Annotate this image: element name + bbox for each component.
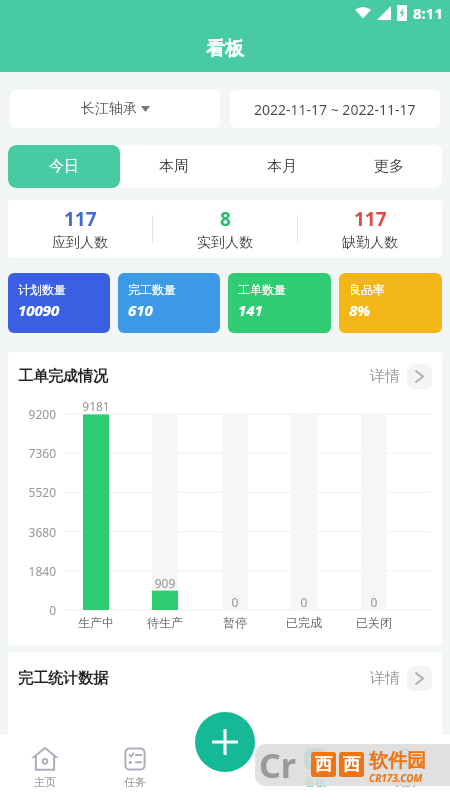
staticText: 完工数量 [128,282,176,297]
staticText: 8 [220,206,231,232]
button[interactable]: 2022-11-17 ~ 2022-11-17 [230,90,440,128]
staticText: 暂停 [205,615,265,630]
staticText: 计划数量 [18,282,66,297]
button[interactable]: 任务 [90,735,180,800]
staticText: 2022-11-17 ~ 2022-11-17 [254,100,416,119]
button[interactable]: 今日 [8,145,120,188]
staticText: 详情 [370,669,400,688]
staticText: 更多 [374,157,404,176]
button[interactable] [195,712,255,772]
button[interactable]: 117 [8,200,152,258]
button[interactable]: 计划数量 [8,273,110,333]
button[interactable]: 我的 [360,735,450,800]
staticText: 缺勤人数 [342,234,398,252]
staticText: 应到人数 [52,234,108,252]
staticText: 软件园 [369,749,426,773]
button[interactable]: 长江轴承 [10,90,220,128]
staticText: 工单完成情况 [18,367,108,386]
staticText: 10090 [18,300,60,320]
button[interactable]: 详情 [370,666,432,691]
staticText: 详情 [370,367,400,386]
staticText: CR173.COM [369,771,423,785]
staticText: 909 [140,575,190,591]
button[interactable]: 117 [298,200,442,258]
staticText: 5520 [8,484,56,500]
staticText: 141 [238,300,263,320]
staticText: 长江轴承 [81,100,137,118]
staticText: 8:11 [413,3,443,23]
staticText: 0 [279,594,329,610]
button[interactable]: 主页 [0,735,90,800]
staticText: 西 [343,754,360,775]
staticText: 0 [8,602,56,618]
staticText: 已关闭 [344,615,404,630]
staticText: 实到人数 [197,234,253,252]
button[interactable]: 更多 [335,145,442,188]
staticText: 完工统计数据 [18,669,108,688]
staticText: 本周 [159,157,189,176]
staticText: 工单数量 [238,282,286,297]
staticText: 117 [354,206,387,232]
staticText: 610 [128,300,153,320]
staticText: 117 [64,206,97,232]
staticText: 待生产 [135,615,195,630]
staticText: 今日 [49,157,79,176]
button[interactable]: 完工数量 [118,273,220,333]
staticText: 西 [315,754,332,775]
button[interactable]: 良品率 [339,273,442,333]
staticText: 看板 [304,775,326,789]
staticText: 9200 [8,406,56,422]
staticText: 任务 [124,775,146,789]
staticText: 良品率 [349,282,385,297]
staticText: 9181 [71,398,121,414]
staticText: 生产中 [66,615,126,630]
staticText: 看板 [206,37,244,61]
staticText: 7360 [8,445,56,461]
button[interactable]: 详情 [370,364,432,389]
staticText: 0 [349,594,399,610]
button[interactable]: 本周 [120,145,228,188]
staticText: Cr [259,744,297,784]
staticText: 0 [210,594,260,610]
staticText: 已完成 [274,615,334,630]
button[interactable]: 工单数量 [228,273,331,333]
button[interactable]: 8 [153,200,297,258]
staticText: 3680 [8,524,56,540]
staticText: 我的 [394,775,416,789]
staticText: 主页 [34,775,56,789]
button[interactable]: 看板 [270,735,360,800]
staticText: 1840 [8,563,56,579]
button[interactable]: 本月 [228,145,335,188]
staticText: 本月 [267,157,297,176]
staticText: 8% [349,300,371,320]
